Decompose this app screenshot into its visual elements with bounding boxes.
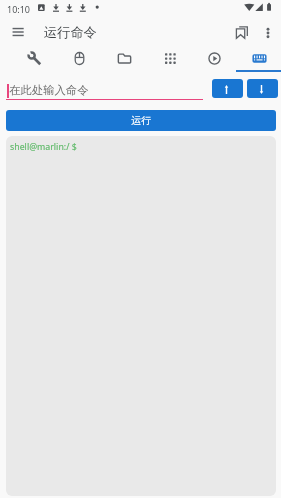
staticText: 运行命令 bbox=[44, 24, 97, 41]
button[interactable]: Keyboard bbox=[238, 45, 280, 71]
button[interactable]: Run bbox=[193, 45, 235, 71]
button[interactable]: Previous command bbox=[212, 79, 243, 98]
button[interactable]: Bookmarks bbox=[229, 19, 254, 44]
button[interactable]: More options bbox=[255, 20, 280, 45]
staticText: shell@marlin:/ $ bbox=[10, 141, 77, 153]
staticText: 运行 bbox=[131, 114, 151, 127]
button[interactable]: 运行 bbox=[6, 110, 276, 131]
button[interactable]: Tools bbox=[13, 45, 55, 71]
button[interactable]: Files bbox=[103, 45, 145, 71]
staticText: 10:10 bbox=[7, 3, 31, 15]
button[interactable]: Navigation menu bbox=[5, 19, 30, 44]
staticText: 在此处输入命令 bbox=[9, 83, 89, 97]
button[interactable]: Mouse bbox=[58, 45, 100, 71]
button[interactable]: Next command bbox=[247, 79, 278, 98]
button[interactable]: Apps bbox=[148, 45, 190, 71]
